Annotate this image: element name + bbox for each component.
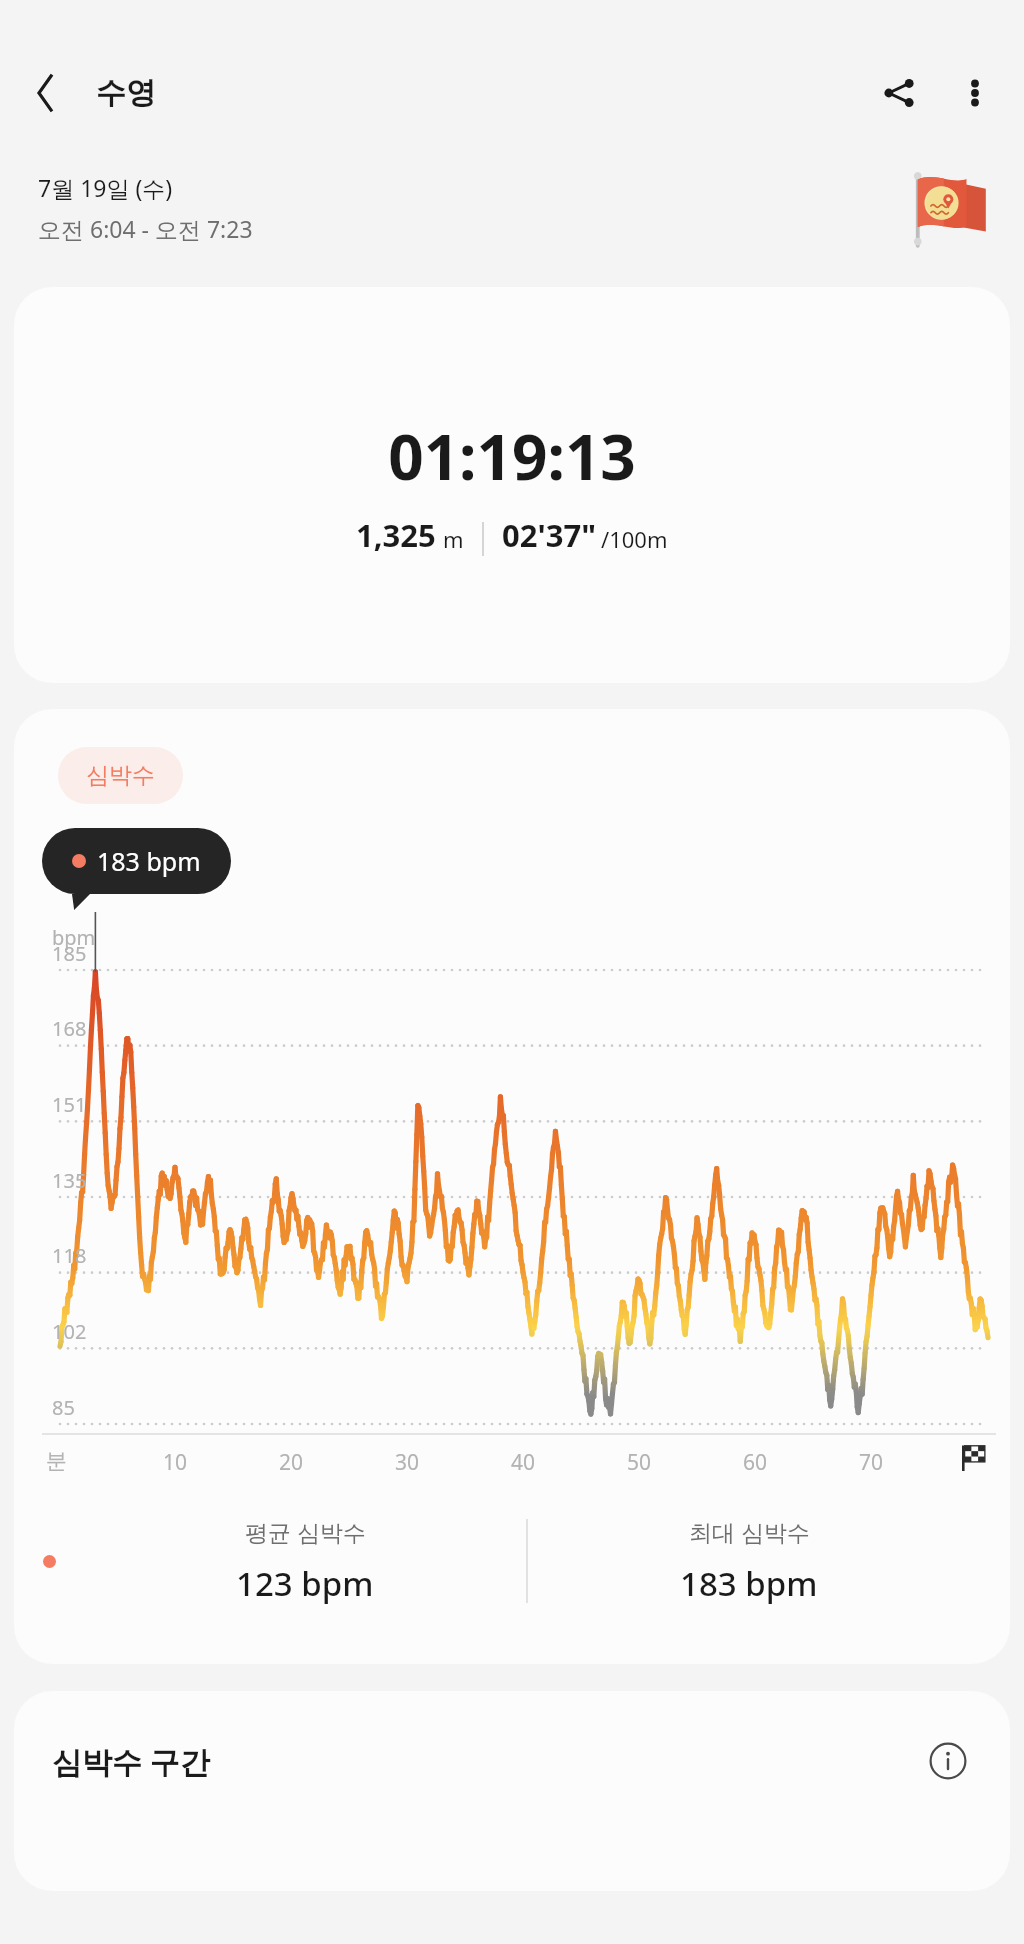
button[interactable]: More options [944, 62, 1006, 124]
staticText: 183 bpm [680, 1561, 818, 1606]
staticText: 50 [627, 1448, 652, 1477]
staticText: 심박수 [86, 761, 155, 790]
staticText: 102 [52, 1318, 87, 1345]
staticText: 85 [52, 1394, 75, 1421]
staticText: 분 [46, 1448, 67, 1474]
staticText: 수영 [96, 74, 156, 112]
staticText: 1,325 [356, 514, 436, 556]
staticText: 최대 심박수 [689, 1516, 810, 1547]
staticText: 02'37" [502, 514, 597, 556]
button[interactable]: Information [924, 1737, 972, 1785]
staticText: 168 [52, 1015, 87, 1042]
staticText: 오전 6:04 - 오전 7:23 [38, 213, 253, 244]
staticText: 185 [52, 940, 87, 967]
staticText: 60 [743, 1448, 768, 1477]
button[interactable]: Share [868, 62, 930, 124]
staticText: 118 [52, 1242, 87, 1269]
button[interactable]: 01:19:13 [14, 287, 1010, 683]
staticText: 20 [279, 1448, 304, 1477]
staticText: 7월 19일 (수) [38, 172, 173, 203]
button[interactable]: 심박수 [58, 747, 183, 804]
staticText: 30 [395, 1448, 420, 1477]
staticText: 40 [511, 1448, 536, 1477]
staticText: 70 [859, 1448, 884, 1477]
button[interactable]: 심박수 구간 [14, 1691, 1010, 1891]
staticText: 123 bpm [236, 1561, 374, 1606]
staticText: 135 [52, 1167, 87, 1194]
staticText: bpm [52, 924, 96, 951]
button[interactable]: Back [14, 62, 76, 124]
staticText: m [443, 524, 464, 554]
staticText: 10 [163, 1448, 188, 1477]
staticText: 평균 심박수 [245, 1516, 366, 1547]
staticText: 심박수 구간 [52, 1741, 924, 1782]
staticText: /100m [601, 524, 668, 554]
staticText: 183 bpm [97, 844, 201, 878]
staticText: 151 [52, 1091, 87, 1118]
staticText: 01:19:13 [388, 414, 636, 498]
